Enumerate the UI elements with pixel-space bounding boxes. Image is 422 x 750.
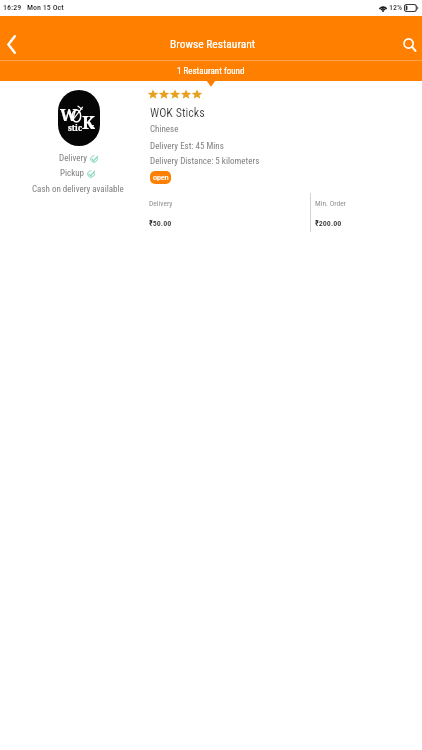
staticText: Delivery (149, 199, 173, 208)
staticText: 1 Restaurant found (177, 66, 245, 77)
staticText: Pickup (60, 168, 85, 179)
button[interactable]: Search (397, 31, 422, 62)
staticText: ₹200.00 (315, 219, 342, 228)
button[interactable]: W (0, 81, 422, 241)
staticText: Delivery (59, 153, 88, 164)
staticText: K (82, 110, 95, 134)
staticText: WOK Sticks (150, 106, 205, 120)
staticText: Cash on delivery available (32, 184, 124, 195)
staticText: Chinese (150, 124, 179, 135)
staticText: Delivery Est: 45 Mins (150, 141, 224, 152)
button[interactable]: open (150, 171, 171, 184)
staticText: open (153, 173, 169, 182)
staticText: ₹50.00 (149, 219, 172, 228)
staticText: Browse Restaurant (170, 37, 256, 50)
staticText: Delivery Distance: 5 kilometers (150, 156, 260, 167)
staticText: W (60, 104, 78, 126)
staticText: Mon 15 Oct (27, 3, 64, 12)
staticText: 16:29 (3, 3, 22, 12)
staticText: stic (68, 122, 83, 133)
staticText: 12% (389, 3, 403, 12)
button[interactable]: Back (0, 29, 23, 60)
staticText: s (91, 122, 95, 132)
staticText: Min. Order (315, 199, 346, 208)
